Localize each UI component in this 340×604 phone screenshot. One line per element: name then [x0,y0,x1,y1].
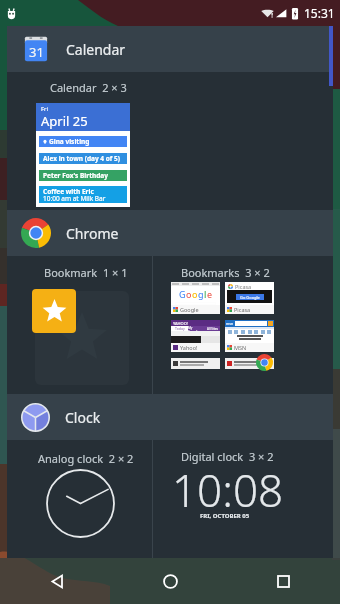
staticText: Bookmark 1 × 1 [44,265,128,280]
button[interactable]: Back [0,558,114,604]
staticText: All Sites [207,327,218,331]
staticText: Go Google [240,295,260,300]
staticText: FRI, OCTOBER 05 [200,512,250,520]
staticText: 10:08 [172,460,284,520]
button[interactable]: Recent apps [227,558,340,604]
staticText: Coffee with Eric [43,187,94,196]
staticText: Today [175,326,185,331]
staticText: Analog clock 2 × 2 [38,451,134,466]
staticText: Chrome [66,224,119,243]
staticText: 10:00 am at Milk Bar [43,194,106,203]
staticText: 31 [29,43,44,61]
staticText: 15:31 [304,5,335,21]
staticText: Picasa [234,306,251,313]
staticText: o [186,288,192,300]
staticText: o [192,288,198,300]
staticText: l [204,288,207,300]
button[interactable]: Analog clock 2 × 2 [7,440,152,558]
staticText: YAHOO! [173,321,188,326]
button[interactable]: Clock [7,394,333,440]
staticText: Calendar 2 × 3 [50,80,127,95]
staticText: Yahoo! [180,344,198,351]
staticText: Gina visiting [49,137,90,146]
staticText: Peter Fox's Birthday [43,171,108,180]
button[interactable]: Home [114,558,227,604]
staticText: Picasa [235,283,252,290]
button[interactable]: Calendar 2 × 3 [7,72,333,210]
staticText: G [179,288,186,300]
staticText: Google [180,306,199,313]
button[interactable]: Bookmark 1 × 1 [7,256,152,394]
staticText: MSN [234,344,247,351]
staticText: Bookmarks 3 × 2 [181,265,270,280]
staticText: msn [226,321,234,326]
staticText: April 25 [41,112,88,130]
button[interactable]: Digital clock 3 × 2 [153,440,333,558]
button[interactable]: Chrome [7,210,333,256]
staticText: Clock [65,408,101,427]
staticText: Calendar [66,40,126,59]
staticText: Digital clock 3 × 2 [181,449,274,464]
staticText: Alex in town (day 4 of 5) [43,154,120,163]
staticText: e [207,288,213,300]
staticText: g [198,288,204,300]
staticText: Fri [41,105,49,113]
button[interactable]: Bookmarks 3 × 2 [153,256,333,394]
button[interactable]: 31 [7,26,333,72]
staticText: My Favorites [188,326,204,331]
